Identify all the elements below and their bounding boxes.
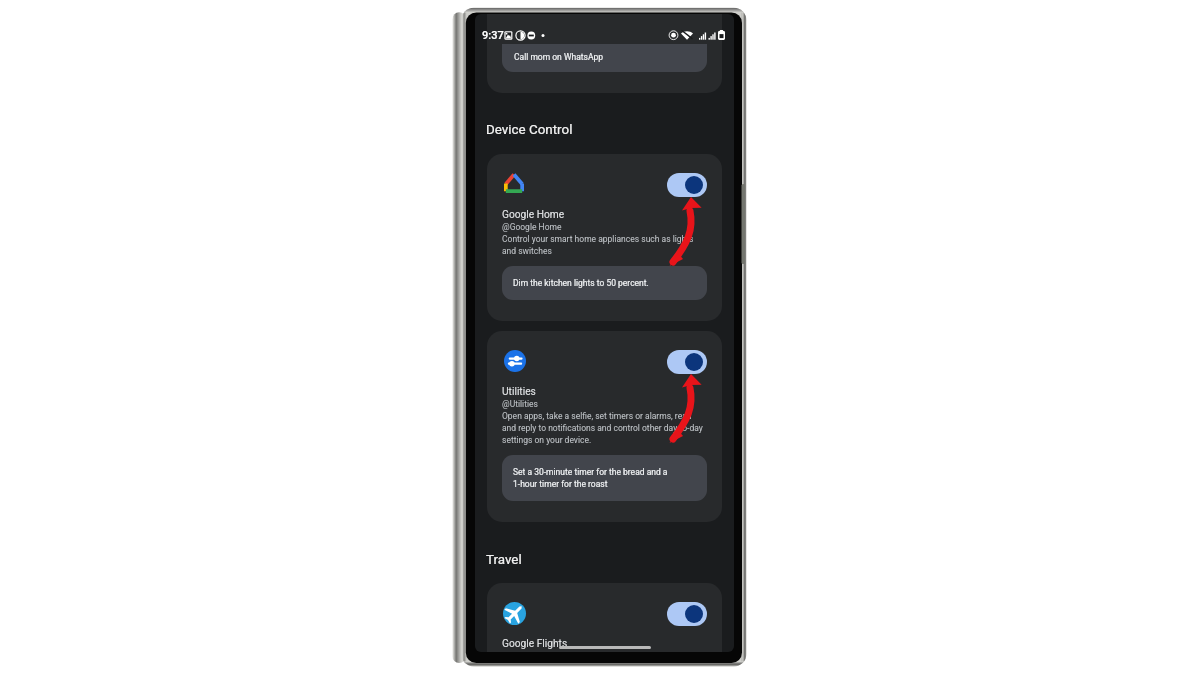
button[interactable]: Toggle on — [667, 173, 707, 197]
button[interactable]: Toggle on — [667, 602, 707, 626]
button[interactable]: Toggle on — [487, 583, 722, 652]
staticText: 9:37 — [482, 29, 504, 42]
staticText: Google Home — [502, 208, 565, 221]
staticText: Open apps, take a selfie, set timers or … — [502, 410, 707, 446]
button[interactable]: Device Control — [486, 122, 734, 138]
button[interactable]: Call mom on WhatsApp — [502, 44, 707, 72]
button[interactable]: Toggle on — [487, 154, 722, 321]
staticText: @Google Home — [502, 221, 562, 233]
staticText: Google Flights — [502, 637, 568, 650]
button[interactable]: Toggle on — [487, 331, 722, 522]
button[interactable]: Set a 30-minute timer for the bread and … — [502, 455, 707, 501]
staticText: Control your smart home appliances such … — [502, 233, 707, 257]
button[interactable]: Toggle on — [667, 350, 707, 374]
button[interactable]: Dim the kitchen lights to 50 percent. — [502, 266, 707, 300]
staticText: Device Control — [486, 122, 573, 138]
button[interactable]: Travel — [486, 552, 734, 568]
staticText: Set a 30-minute timer for the bread and … — [513, 466, 668, 490]
staticText: Call mom on WhatsApp — [514, 52, 604, 62]
staticText: Travel — [486, 552, 522, 568]
staticText: Dim the kitchen lights to 50 percent. — [513, 277, 649, 289]
staticText: @Utilities — [502, 398, 538, 410]
staticText: Utilities — [502, 385, 536, 398]
